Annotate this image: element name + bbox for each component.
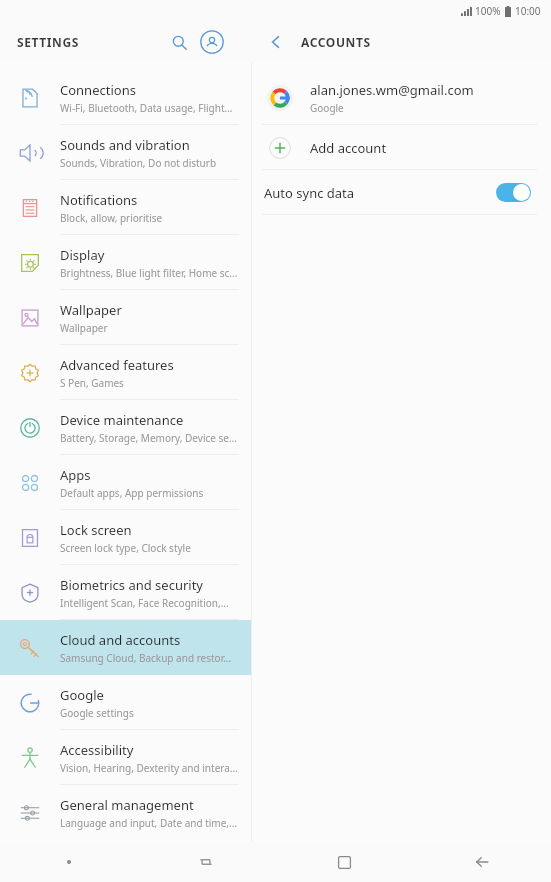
- staticText: Language and input, Date and time,...: [60, 816, 238, 830]
- staticText: 100%: [475, 4, 501, 18]
- staticText: Google: [60, 686, 104, 704]
- button[interactable]: Wallpaper: [0, 290, 251, 345]
- staticText: Lock screen: [60, 521, 132, 539]
- button[interactable]: Search: [164, 27, 194, 57]
- staticText: Vision, Hearing, Dexterity and intera...: [60, 761, 238, 775]
- staticText: Sounds, Vibration, Do not disturb: [60, 156, 217, 170]
- button[interactable]: Account: [197, 27, 227, 57]
- button[interactable]: Notifications: [0, 180, 251, 235]
- staticText: Accessibility: [60, 741, 134, 759]
- staticText: SETTINGS: [17, 34, 79, 50]
- button[interactable]: Recents: [137, 842, 275, 882]
- staticText: Google settings: [60, 706, 134, 720]
- staticText: Brightness, Blue light filter, Home sc..…: [60, 266, 238, 280]
- button[interactable]: alan.jones.wm@gmail.com: [252, 70, 551, 125]
- staticText: Cloud and accounts: [60, 631, 181, 649]
- staticText: Biometrics and security: [60, 576, 204, 594]
- staticText: Notifications: [60, 191, 138, 209]
- staticText: S Pen, Games: [60, 376, 124, 390]
- staticText: ACCOUNTS: [301, 34, 371, 50]
- staticText: Add account: [310, 139, 387, 157]
- staticText: Intelligent Scan, Face Recognition,...: [60, 596, 229, 610]
- staticText: Block, allow, prioritise: [60, 211, 163, 225]
- staticText: Wallpaper: [60, 321, 108, 335]
- button[interactable]: Accessibility: [0, 730, 251, 785]
- button[interactable]: Device maintenance: [0, 400, 251, 455]
- button[interactable]: Display: [0, 235, 251, 290]
- button[interactable]: Back: [259, 25, 293, 59]
- button[interactable]: Back: [413, 842, 551, 882]
- staticText: Display: [60, 246, 105, 264]
- button[interactable]: Apps: [0, 455, 251, 510]
- staticText: Device maintenance: [60, 411, 184, 429]
- staticText: Sounds and vibration: [60, 136, 190, 154]
- button[interactable]: Add account: [252, 125, 551, 170]
- button[interactable]: Advanced features: [0, 345, 251, 400]
- button[interactable]: Cloud and accounts: [0, 620, 251, 675]
- staticText: Wallpaper: [60, 301, 122, 319]
- staticText: Auto sync data: [264, 184, 496, 202]
- button[interactable]: Connections: [0, 70, 251, 125]
- button[interactable]: Sounds and vibration: [0, 125, 251, 180]
- staticText: General management: [60, 796, 194, 814]
- staticText: Battery, Storage, Memory, Device se...: [60, 431, 237, 445]
- staticText: Default apps, App permissions: [60, 486, 204, 500]
- staticText: Advanced features: [60, 356, 174, 374]
- staticText: Screen lock type, Clock style: [60, 541, 191, 555]
- staticText: alan.jones.wm@gmail.com: [310, 81, 474, 99]
- button[interactable]: Menu dot: [0, 842, 137, 882]
- staticText: Google: [310, 101, 344, 115]
- button[interactable]: Google: [0, 675, 251, 730]
- staticText: Samsung Cloud, Backup and restor...: [60, 651, 232, 665]
- staticText: Connections: [60, 81, 136, 99]
- button[interactable]: Lock screen: [0, 510, 251, 565]
- button[interactable]: Auto sync data: [252, 170, 551, 215]
- button[interactable]: General management: [0, 785, 251, 840]
- button[interactable]: Biometrics and security: [0, 565, 251, 620]
- staticText: 10:00: [515, 4, 541, 18]
- staticText: Apps: [60, 466, 91, 484]
- staticText: Wi-Fi, Bluetooth, Data usage, Flight...: [60, 101, 233, 115]
- button[interactable]: Home: [275, 842, 413, 882]
